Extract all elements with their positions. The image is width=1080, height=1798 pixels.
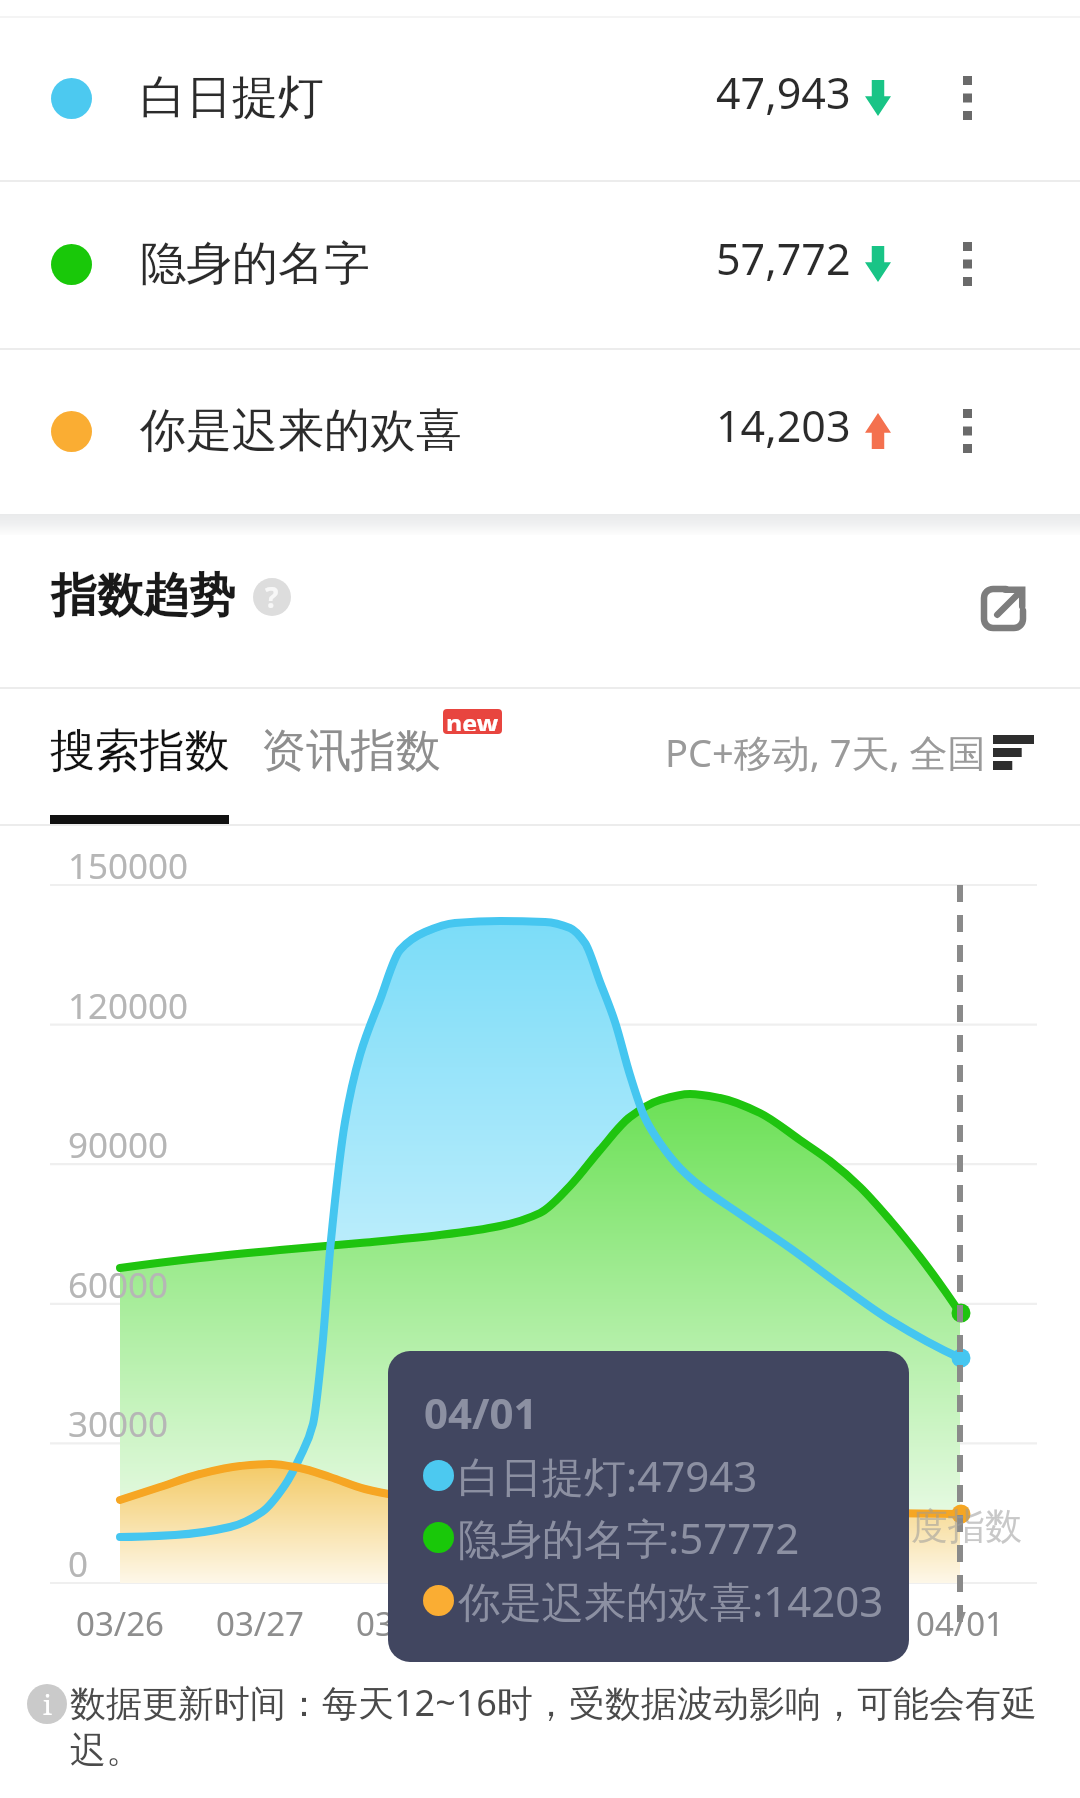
staticText: 你是迟来的欢喜:14203 <box>458 1572 884 1629</box>
staticText: 隐身的名字 <box>140 235 370 293</box>
staticText: 04/01 <box>424 1384 538 1441</box>
button[interactable]: Open in new window <box>956 561 1051 656</box>
button[interactable]: More options <box>923 16 1011 180</box>
staticText: 03/29 <box>496 1601 584 1646</box>
button[interactable]: 白日提灯 <box>0 16 1080 180</box>
staticText: 57,772 <box>716 229 851 288</box>
staticText: 隐身的名字:57772 <box>458 1509 800 1566</box>
staticText: 14,203 <box>716 396 851 455</box>
staticText: 指数趋势 <box>51 567 235 625</box>
staticText: 03/28 <box>356 1601 444 1646</box>
button[interactable]: Help <box>253 578 291 616</box>
button[interactable]: PC+移动, 7天, 全国 <box>665 726 1034 778</box>
staticText: PC+移动, 7天, 全国 <box>665 726 986 778</box>
staticText: 03/31 <box>776 1601 864 1646</box>
staticText: i <box>43 1685 52 1723</box>
staticText: 47,943 <box>716 63 851 122</box>
staticText: 百度指数 <box>874 1503 1022 1550</box>
button[interactable]: 隐身的名字 <box>0 180 1080 348</box>
staticText: 数据更新时间：每天12~16时，受数据波动影响，可能会有延 <box>70 1678 1037 1727</box>
staticText: ? <box>265 578 279 616</box>
staticText: 03/27 <box>216 1601 304 1646</box>
staticText: 0 <box>68 1540 89 1588</box>
staticText: 迟。 <box>70 1727 142 1772</box>
button[interactable]: 你是迟来的欢喜 <box>0 348 1080 514</box>
staticText: new <box>446 709 499 731</box>
staticText: 150000 <box>68 842 189 890</box>
staticText: 白日提灯:47943 <box>458 1447 758 1504</box>
staticText: 你是迟来的欢喜 <box>140 402 462 460</box>
staticText: 90000 <box>68 1121 169 1169</box>
staticText: 60000 <box>68 1261 169 1309</box>
button[interactable]: 搜索指数 <box>50 723 230 780</box>
staticText: 04/01 <box>916 1601 1004 1646</box>
staticText: 30000 <box>68 1400 169 1448</box>
staticText: 白日提灯 <box>140 69 324 127</box>
button[interactable]: More options <box>923 180 1011 348</box>
staticText: 03/26 <box>76 1601 164 1646</box>
staticText: 03/30 <box>636 1601 724 1646</box>
button[interactable]: More options <box>923 348 1011 514</box>
button[interactable]: 资讯指数 <box>261 723 441 780</box>
staticText: 120000 <box>68 982 189 1030</box>
